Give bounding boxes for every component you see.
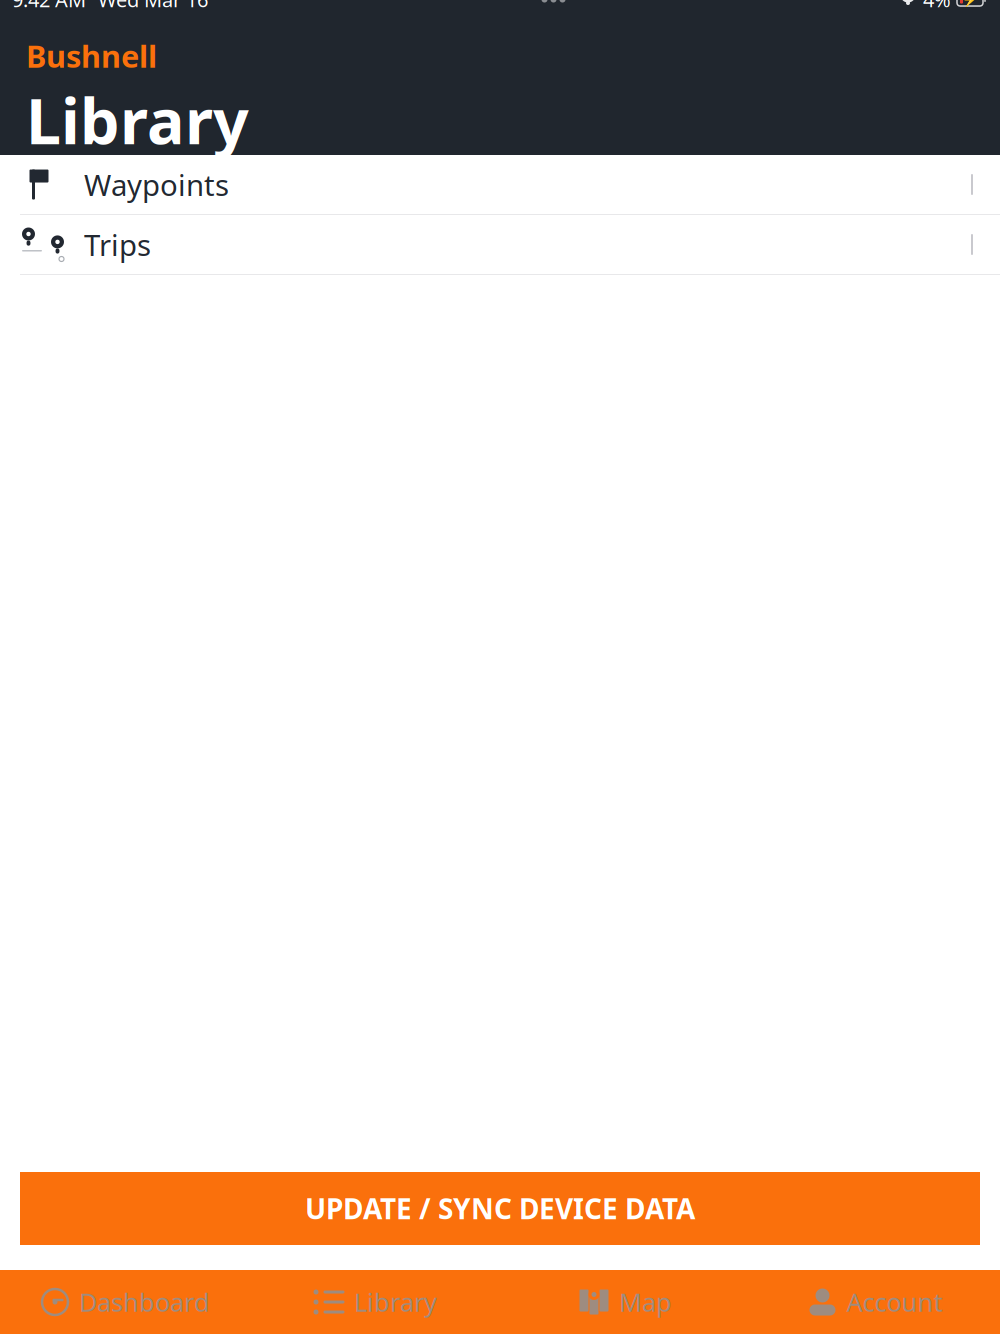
staticText: 9:42 AM bbox=[12, 0, 86, 13]
button[interactable]: UPDATE / SYNC DEVICE DATA bbox=[20, 1172, 980, 1245]
staticText: Library bbox=[26, 78, 249, 161]
staticText: Account bbox=[846, 1285, 942, 1319]
staticText: UPDATE / SYNC DEVICE DATA bbox=[305, 1190, 695, 1227]
staticText: Library bbox=[354, 1285, 437, 1319]
staticText: Bushnell bbox=[26, 35, 157, 76]
button[interactable]: Library bbox=[250, 1270, 500, 1334]
button[interactable]: Waypoints bbox=[0, 155, 1000, 215]
button[interactable]: Account bbox=[750, 1270, 1000, 1334]
staticText: 4% bbox=[923, 0, 951, 13]
button[interactable]: Dashboard bbox=[0, 1270, 250, 1334]
button[interactable]: Map bbox=[500, 1270, 750, 1334]
staticText: Dashboard bbox=[79, 1285, 210, 1319]
staticText: ⚡ bbox=[961, 0, 978, 7]
staticText: Waypoints bbox=[84, 165, 229, 204]
button[interactable]: Trips bbox=[0, 215, 1000, 275]
staticText: Trips bbox=[84, 225, 151, 264]
staticText: Wed Mar 16 bbox=[98, 0, 208, 13]
staticText: Map bbox=[619, 1285, 672, 1319]
